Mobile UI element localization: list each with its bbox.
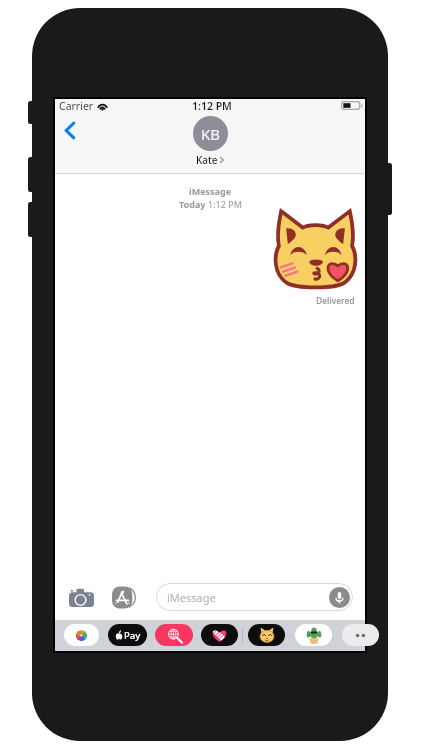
staticText: Pay xyxy=(124,629,141,642)
staticText: KB xyxy=(201,124,221,144)
staticText: 1:12 PM xyxy=(192,99,232,112)
button[interactable]: Apple Pay xyxy=(108,624,147,646)
staticText: iMessage xyxy=(189,185,232,197)
button[interactable]: Images xyxy=(155,624,193,646)
button[interactable]: Hearts xyxy=(201,624,238,646)
staticText: Delivered xyxy=(316,295,355,307)
button[interactable]: Cat stickers xyxy=(248,624,285,646)
button[interactable]: Cactus stickers xyxy=(295,624,332,646)
button[interactable]: Photos xyxy=(64,624,99,646)
button[interactable]: Camera xyxy=(65,584,97,610)
staticText: Today xyxy=(179,198,208,210)
staticText: iMessage xyxy=(167,590,216,605)
button[interactable]: Back xyxy=(58,118,82,142)
staticText: Carrier xyxy=(59,99,94,112)
button[interactable]: iMessage xyxy=(156,583,353,611)
staticText: 1:12 PM xyxy=(208,198,242,210)
button[interactable]: KB xyxy=(55,116,365,167)
staticText: Kate xyxy=(196,153,218,167)
button[interactable]: More apps xyxy=(342,624,379,646)
button[interactable]: App Store xyxy=(110,584,136,610)
